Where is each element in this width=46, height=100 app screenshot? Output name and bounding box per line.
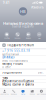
staticText: Папки bbox=[30, 93, 35, 95]
button[interactable]: Контакты bbox=[0, 88, 9, 96]
button[interactable]: Видео bbox=[23, 32, 34, 39]
staticText: Видео bbox=[26, 37, 31, 39]
staticText: был(а) недавно bbox=[12, 25, 34, 28]
button[interactable]: Подарить Premium bbox=[0, 42, 46, 48]
staticText: +7 916 555-03-18 bbox=[2, 49, 30, 53]
staticText: о себе bbox=[2, 65, 10, 69]
button[interactable]: Изменить bbox=[30, 5, 44, 10]
staticText: Настройки bbox=[37, 93, 46, 95]
button[interactable]: Избранные сообщения bbox=[0, 80, 46, 83]
staticText: Уведомления bbox=[2, 71, 22, 74]
staticText: имя пользователя bbox=[2, 59, 28, 63]
staticText: Вкл. bbox=[38, 71, 44, 74]
button[interactable]: Чаты bbox=[0, 76, 46, 79]
button[interactable]: @natalya_v bbox=[0, 56, 46, 62]
staticText: Подарить Premium bbox=[7, 43, 33, 47]
button[interactable]: Уведомления bbox=[0, 70, 46, 75]
staticText: НВ bbox=[20, 9, 26, 14]
staticText: Избранные сообщения bbox=[2, 79, 34, 83]
button[interactable]: Звонок bbox=[12, 32, 23, 39]
staticText: мобильный bbox=[2, 53, 19, 56]
button[interactable]: Ещё bbox=[34, 32, 45, 39]
staticText: Сообщ. bbox=[4, 37, 9, 39]
staticText: Изменить bbox=[31, 6, 43, 9]
staticText: Наталья Викторовна bbox=[3, 20, 43, 26]
button[interactable]: Москва, Россия bbox=[0, 62, 46, 69]
button[interactable]: Папки bbox=[28, 88, 37, 96]
staticText: Ещё bbox=[38, 37, 41, 39]
button[interactable]: Настройки bbox=[37, 88, 46, 96]
staticText: Москва, Россия bbox=[2, 62, 23, 65]
staticText: Чаты bbox=[21, 93, 25, 95]
staticText: @natalya_v bbox=[2, 55, 14, 59]
staticText: Медиа, ссылки и файлы bbox=[2, 83, 34, 86]
staticText: Звонки bbox=[11, 93, 17, 95]
staticText: Звонок bbox=[15, 37, 21, 39]
staticText: Чаты bbox=[2, 76, 8, 80]
button[interactable]: +7 916 555-03-18 bbox=[0, 49, 46, 56]
staticText: Контакты bbox=[1, 93, 9, 95]
button[interactable]: Чаты bbox=[18, 88, 28, 96]
button[interactable]: Звонки bbox=[9, 88, 18, 96]
staticText: 9:41 bbox=[3, 1, 10, 4]
button[interactable]: Медиа, ссылки и файлы bbox=[0, 83, 46, 86]
button[interactable]: Сообщ. bbox=[1, 32, 12, 39]
